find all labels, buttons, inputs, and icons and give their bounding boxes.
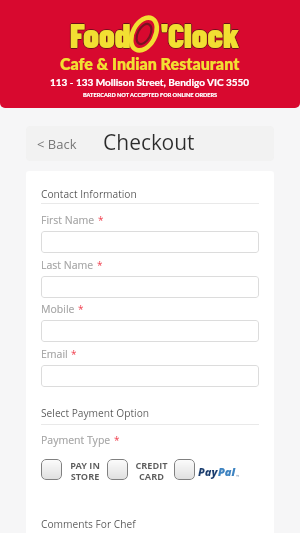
button[interactable] [41, 231, 259, 253]
staticText: Food [69, 14, 130, 55]
staticText: Cafe & Indian Restaurant [60, 54, 240, 73]
staticText: ™ [236, 473, 240, 479]
staticText: * [98, 213, 104, 227]
staticText: Comments For Chef [41, 517, 136, 531]
button[interactable] [41, 365, 259, 387]
staticText: Food [70, 14, 131, 55]
button[interactable]: PayPal [174, 459, 195, 480]
staticText: CREDIT CARD [135, 459, 168, 482]
button[interactable]: PAY IN STORE [70, 459, 102, 482]
staticText: * [97, 258, 103, 272]
staticText: < Back [37, 135, 77, 153]
staticText: Payment Type [41, 433, 111, 447]
staticText: Email [41, 347, 68, 361]
staticText: 113 - 133 Mollison Street, Bendigo VIC 3… [50, 76, 250, 88]
staticText: PAY IN STORE [70, 459, 100, 482]
button[interactable]: < Back [34, 126, 79, 161]
staticText: * [71, 347, 77, 361]
staticText: Food [71, 14, 132, 55]
button[interactable]: PayPal [198, 464, 240, 479]
staticText: 'Clock [161, 13, 240, 54]
button[interactable]: CREDIT CARD [135, 459, 170, 482]
staticText: 'Clock [161, 15, 240, 56]
staticText: Select Payment Option [41, 406, 150, 420]
staticText: Last Name [41, 258, 94, 272]
staticText: BATERCARD NOT ACCEPTED FOR ONLINE ORDERS [83, 91, 218, 98]
staticText: Food [70, 13, 131, 54]
staticText: * [78, 302, 84, 316]
staticText: 'Clock [161, 14, 240, 55]
button[interactable]: Credit card [107, 459, 128, 480]
staticText: Pal [218, 464, 236, 479]
staticText: * [114, 433, 120, 447]
staticText: 'Clock [162, 14, 241, 55]
button[interactable] [41, 276, 259, 298]
button[interactable] [41, 320, 259, 342]
staticText: Mobile [41, 302, 75, 316]
staticText: Contact Information [41, 187, 137, 201]
staticText: 'Clock [160, 14, 239, 55]
button[interactable]: Pay in store [41, 459, 62, 480]
staticText: Pay [198, 464, 218, 479]
staticText: First Name [41, 213, 95, 227]
staticText: Checkout [103, 128, 195, 157]
staticText: Food [70, 15, 131, 56]
